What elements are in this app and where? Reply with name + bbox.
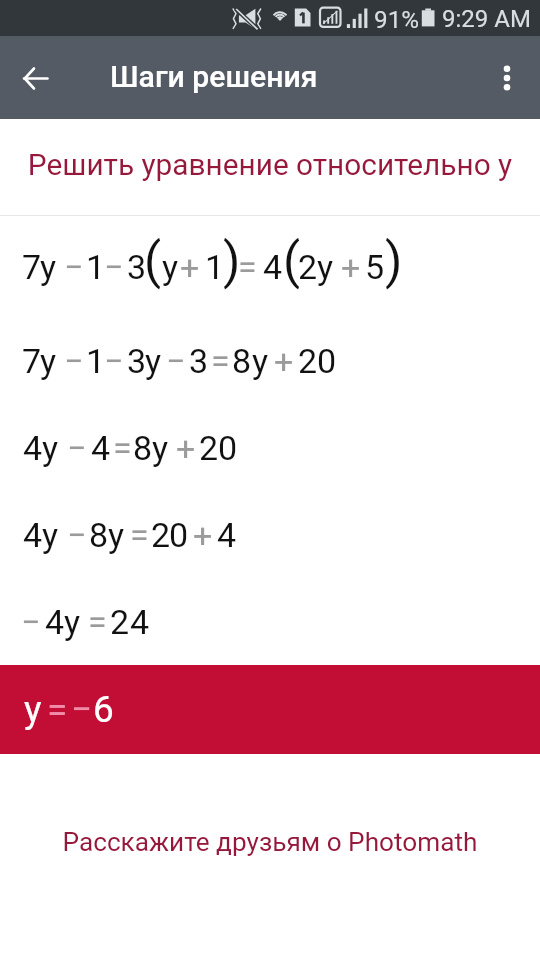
staticText: y bbox=[152, 428, 169, 468]
staticText: Расскажите друзьям о Photomath bbox=[0, 827, 540, 858]
staticText: y bbox=[40, 341, 57, 381]
staticText: = bbox=[88, 602, 107, 642]
staticText: 4 bbox=[23, 515, 43, 555]
staticText: = bbox=[211, 341, 230, 381]
staticText: 2 bbox=[298, 341, 318, 381]
staticText: ) bbox=[223, 232, 241, 291]
staticText: 0 bbox=[218, 428, 238, 468]
staticText: 2 bbox=[151, 515, 171, 555]
staticText: y bbox=[40, 247, 57, 287]
staticText: = bbox=[130, 515, 149, 555]
staticText: − bbox=[67, 515, 87, 555]
button[interactable]: More options bbox=[483, 54, 531, 102]
staticText: 8 bbox=[232, 341, 252, 381]
staticText: = bbox=[238, 247, 257, 287]
staticText: 2 bbox=[298, 247, 318, 287]
staticText: 5 bbox=[365, 247, 385, 287]
staticText: 1 bbox=[86, 341, 106, 381]
staticText: 2 bbox=[199, 428, 219, 468]
staticText: − bbox=[166, 341, 186, 381]
staticText: 0 bbox=[169, 515, 189, 555]
staticText: 8 bbox=[89, 515, 109, 555]
staticText: y bbox=[145, 341, 162, 381]
staticText: − bbox=[64, 341, 84, 381]
staticText: 1 bbox=[205, 247, 225, 287]
staticText: y bbox=[64, 602, 81, 642]
staticText: 9:29 AM bbox=[442, 5, 531, 33]
staticText: ) bbox=[385, 232, 403, 291]
staticText: = bbox=[113, 428, 132, 468]
staticText: − bbox=[104, 341, 124, 381]
staticText: 4 bbox=[130, 602, 150, 642]
staticText: y bbox=[42, 515, 59, 555]
staticText: = bbox=[47, 688, 68, 731]
staticText: 7 bbox=[22, 341, 42, 381]
staticText: ( bbox=[283, 232, 301, 291]
staticText: 91% bbox=[374, 5, 420, 33]
staticText: − bbox=[64, 247, 84, 287]
staticText: 6 bbox=[93, 688, 114, 731]
staticText: 0 bbox=[317, 341, 337, 381]
staticText: + bbox=[193, 515, 213, 555]
staticText: + bbox=[341, 247, 361, 287]
staticText: + bbox=[274, 341, 294, 381]
staticText: 4 bbox=[23, 428, 43, 468]
staticText: Шаги решения bbox=[110, 59, 318, 94]
staticText: − bbox=[104, 247, 124, 287]
staticText: 3 bbox=[127, 247, 147, 287]
staticText: 7 bbox=[22, 247, 42, 287]
staticText: y bbox=[24, 688, 42, 731]
staticText: Решить уравнение относительно y bbox=[0, 147, 540, 182]
button[interactable]: Back bbox=[11, 54, 59, 102]
staticText: 1 bbox=[86, 247, 106, 287]
staticText: 8 bbox=[133, 428, 153, 468]
staticText: 4 bbox=[263, 247, 283, 287]
staticText: y bbox=[42, 428, 59, 468]
staticText: 4 bbox=[45, 602, 65, 642]
staticText: − bbox=[67, 428, 87, 468]
staticText: 2 bbox=[110, 602, 130, 642]
staticText: + bbox=[180, 247, 200, 287]
staticText: ( bbox=[144, 232, 162, 291]
staticText: 3 bbox=[127, 341, 147, 381]
staticText: 3 bbox=[189, 341, 209, 381]
staticText: + bbox=[176, 428, 196, 468]
staticText: 4 bbox=[91, 428, 111, 468]
staticText: y bbox=[317, 247, 334, 287]
staticText: y bbox=[108, 515, 125, 555]
staticText: y bbox=[252, 341, 269, 381]
staticText: − bbox=[21, 602, 41, 642]
staticText: 4 bbox=[217, 515, 237, 555]
staticText: y bbox=[162, 247, 179, 287]
staticText: − bbox=[71, 688, 93, 731]
